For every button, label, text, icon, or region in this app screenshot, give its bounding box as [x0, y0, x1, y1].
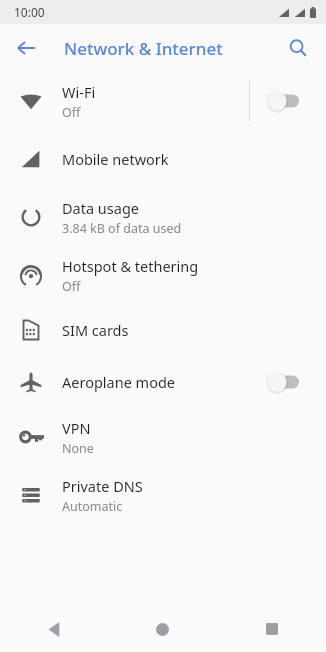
button[interactable]: VPN — [0, 408, 326, 466]
button[interactable]: Toggle — [266, 367, 312, 397]
staticText: 10:00 — [14, 4, 45, 20]
button[interactable]: Aeroplane mode — [0, 356, 326, 408]
button[interactable]: Hotspot & tethering — [0, 246, 326, 304]
button[interactable]: Data usage — [0, 188, 326, 246]
button[interactable]: Back — [8, 30, 44, 66]
button[interactable]: Search — [280, 30, 316, 66]
staticText: Private DNS — [62, 476, 143, 496]
staticText: None — [62, 440, 94, 457]
button[interactable]: Private DNS — [0, 466, 326, 524]
button[interactable]: Mobile network — [0, 130, 326, 188]
staticText: SIM cards — [62, 320, 129, 340]
staticText: Aeroplane mode — [62, 372, 176, 392]
staticText: Wi-Fi — [62, 82, 96, 102]
staticText: Automatic — [62, 498, 123, 515]
staticText: VPN — [62, 418, 91, 438]
staticText: Off — [62, 278, 81, 295]
staticText: Off — [62, 104, 81, 121]
button[interactable]: Toggle — [266, 86, 312, 116]
button[interactable]: SIM cards — [0, 304, 326, 356]
staticText: Mobile network — [62, 149, 169, 169]
staticText: Network & Internet — [64, 37, 223, 60]
staticText: Hotspot & tethering — [62, 256, 199, 276]
staticText: 3.84 kB of data used — [62, 220, 182, 237]
button[interactable]: Back — [0, 606, 108, 652]
button[interactable]: Home — [108, 606, 217, 652]
button[interactable]: Recent apps — [217, 606, 326, 652]
button[interactable]: Wi-Fi — [0, 72, 326, 130]
staticText: Data usage — [62, 198, 139, 218]
